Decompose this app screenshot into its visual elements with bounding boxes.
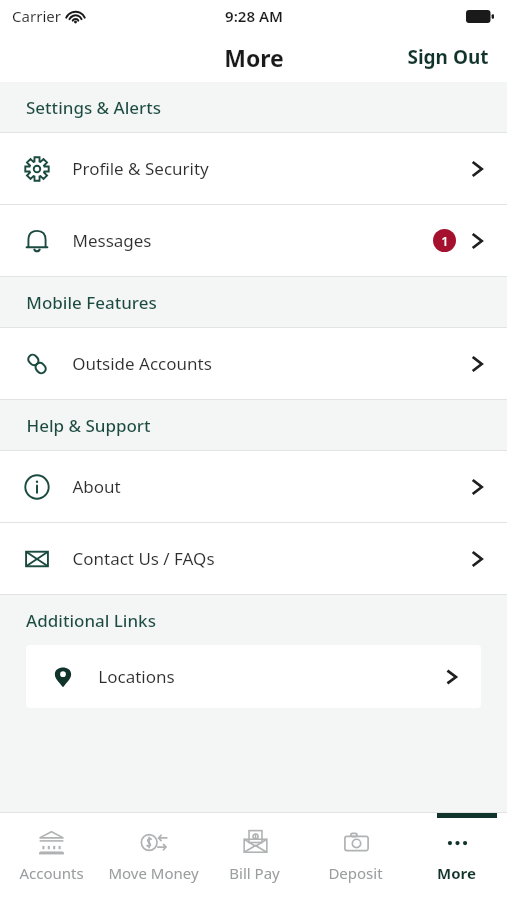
- other: Move Money: [140, 829, 167, 856]
- staticText: About: [72, 475, 121, 498]
- staticText: Additional Links: [26, 609, 156, 632]
- staticText: Messages: [72, 229, 152, 252]
- other: Locations: [52, 666, 74, 688]
- staticText: More: [437, 863, 476, 883]
- button[interactable]: Locations: [26, 645, 481, 708]
- other: Messages: [24, 228, 50, 254]
- other: Contact Us and FAQs: [24, 546, 50, 572]
- button[interactable]: Deposit: [305, 813, 406, 900]
- staticText: 9:28 AM: [225, 6, 283, 26]
- button[interactable]: About: [0, 451, 507, 522]
- staticText: Contact Us / FAQs: [72, 547, 215, 570]
- staticText: Locations: [98, 665, 175, 688]
- other: Deposit: [343, 829, 370, 856]
- button[interactable]: More: [406, 813, 507, 900]
- button[interactable]: Contact Us and FAQs: [0, 523, 507, 594]
- other: Accounts: [38, 829, 65, 856]
- staticText: Accounts: [19, 863, 84, 883]
- other: About: [24, 474, 50, 500]
- staticText: Move Money: [108, 863, 199, 883]
- staticText: Carrier: [12, 6, 61, 26]
- button[interactable]: Move Money: [102, 813, 204, 900]
- other: Outside Accounts: [24, 351, 50, 377]
- button[interactable]: Profile and Security: [0, 133, 507, 204]
- staticText: More: [224, 42, 284, 73]
- staticText: Bill Pay: [229, 863, 280, 883]
- staticText: Profile & Security: [72, 157, 209, 180]
- button[interactable]: Accounts: [0, 813, 102, 900]
- staticText: Help & Support: [26, 414, 151, 437]
- button[interactable]: Messages: [0, 205, 507, 276]
- staticText: Deposit: [328, 863, 383, 883]
- button[interactable]: Bill Pay: [204, 813, 305, 900]
- staticText: Outside Accounts: [72, 352, 212, 375]
- staticText: Sign Out: [407, 44, 489, 70]
- button[interactable]: Outside Accounts: [0, 328, 507, 399]
- staticText: Settings & Alerts: [26, 96, 161, 119]
- other: Bill Pay: [242, 829, 269, 856]
- button[interactable]: Sign Out: [389, 36, 507, 78]
- staticText: Mobile Features: [26, 291, 157, 314]
- other: Profile and Security: [24, 156, 50, 182]
- staticText: 1: [441, 232, 449, 250]
- other: More: [444, 829, 471, 856]
